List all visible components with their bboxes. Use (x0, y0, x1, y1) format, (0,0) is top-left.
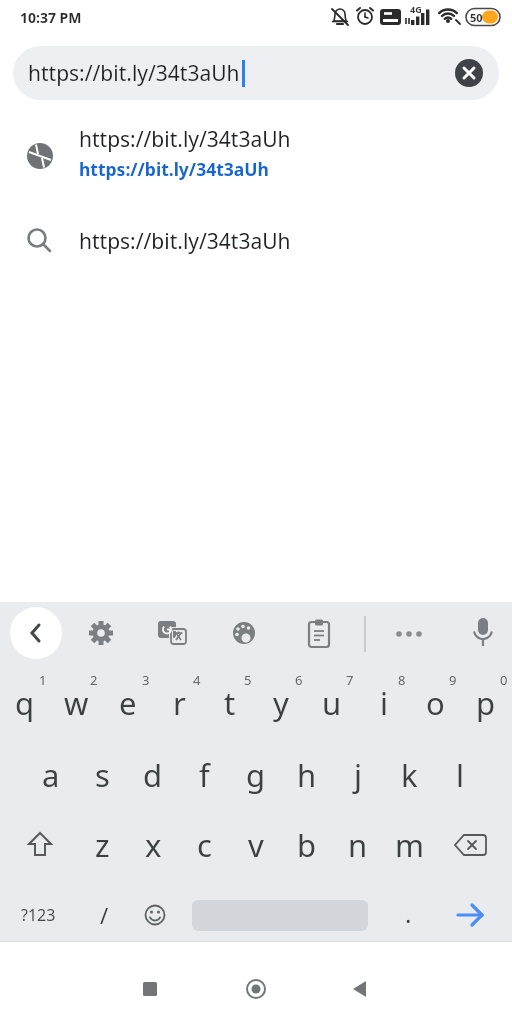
button[interactable] (455, 59, 483, 87)
staticText: 10:37 PM (20, 8, 82, 27)
staticText: ?123 (21, 904, 56, 926)
staticText: v (248, 824, 264, 866)
button[interactable] (87, 619, 115, 647)
staticText: 7 (346, 671, 354, 689)
staticText: / (100, 900, 109, 930)
staticText: p (476, 682, 496, 724)
staticText: u (322, 682, 342, 724)
staticText: s (95, 754, 110, 796)
staticText: g (246, 754, 266, 796)
button[interactable] (452, 833, 488, 857)
button[interactable]: z (77, 822, 127, 868)
staticText: x (145, 824, 162, 866)
staticText: . (405, 897, 412, 930)
staticText: 3 (142, 671, 150, 689)
button[interactable]: s (77, 752, 127, 798)
button[interactable]: x (128, 822, 178, 868)
button[interactable] (10, 607, 62, 659)
staticText: y (273, 682, 289, 724)
staticText: b (297, 824, 317, 866)
button[interactable]: https://bit.ly/34t3aUh (0, 124, 512, 190)
staticText: c (197, 824, 212, 866)
button[interactable]: c (179, 822, 229, 868)
staticText: 2 (90, 671, 98, 689)
staticText: https://bit.ly/34t3aUh (79, 125, 291, 154)
staticText: e (119, 682, 137, 724)
staticText: m (395, 824, 424, 866)
button[interactable] (231, 621, 257, 647)
button[interactable]: i (359, 680, 409, 726)
button[interactable] (470, 616, 496, 652)
button[interactable] (24, 831, 56, 859)
staticText: 8 (398, 671, 406, 689)
staticText: i (380, 682, 388, 724)
staticText: f (199, 754, 210, 796)
button[interactable]: q (0, 680, 50, 726)
button[interactable]: b (282, 822, 332, 868)
button[interactable]: g (231, 752, 281, 798)
button[interactable]: p (461, 680, 511, 726)
button[interactable] (307, 619, 333, 649)
staticText: a (42, 754, 60, 796)
button[interactable]: u (307, 680, 357, 726)
button[interactable]: a (26, 752, 76, 798)
button[interactable] (135, 895, 175, 935)
staticText: 5 (244, 671, 252, 689)
button[interactable]: t (205, 680, 255, 726)
button[interactable]: m (384, 822, 434, 868)
staticText: 9 (449, 671, 457, 689)
staticText: https://bit.ly/34t3aUh (79, 157, 269, 181)
button[interactable] (349, 978, 371, 1000)
button[interactable] (245, 978, 267, 1000)
staticText: https://bit.ly/34t3aUh (28, 59, 240, 88)
staticText: 6 (295, 671, 303, 689)
button[interactable]: l (435, 752, 485, 798)
button[interactable] (395, 627, 425, 641)
staticText: o (426, 682, 445, 724)
button[interactable]: e (103, 680, 153, 726)
button[interactable] (157, 618, 187, 648)
button[interactable] (139, 978, 161, 1000)
button[interactable]: https://bit.ly/34t3aUh (13, 46, 499, 100)
button[interactable]: d (128, 752, 178, 798)
staticText: 4 (193, 671, 201, 689)
button[interactable]: . (383, 890, 433, 936)
staticText: z (95, 824, 110, 866)
staticText: 50 (470, 10, 483, 25)
button[interactable]: ?123 (13, 892, 63, 938)
staticText: q (15, 682, 35, 724)
button[interactable]: https://bit.ly/34t3aUh (0, 218, 512, 268)
staticText: k (401, 754, 418, 796)
staticText: h (297, 754, 317, 796)
button[interactable]: f (179, 752, 229, 798)
button[interactable]: o (410, 680, 460, 726)
staticText: 0 (500, 671, 508, 689)
button[interactable]: r (154, 680, 204, 726)
button[interactable]: y (256, 680, 306, 726)
staticText: r (173, 682, 186, 724)
staticText: 4G (410, 3, 422, 15)
button[interactable]: j (333, 752, 383, 798)
staticText: d (143, 754, 163, 796)
staticText: l (456, 754, 464, 796)
staticText: n (348, 824, 368, 866)
staticText: w (64, 682, 89, 724)
button[interactable] (450, 899, 490, 931)
button[interactable]: w (51, 680, 101, 726)
button[interactable]: n (333, 822, 383, 868)
staticText: https://bit.ly/34t3aUh (79, 227, 291, 256)
button[interactable]: h (282, 752, 332, 798)
staticText: 1 (39, 671, 47, 689)
button[interactable]: k (384, 752, 434, 798)
button[interactable]: v (231, 822, 281, 868)
staticText: t (224, 682, 236, 724)
button[interactable]: / (79, 892, 129, 938)
staticText: j (354, 754, 362, 796)
